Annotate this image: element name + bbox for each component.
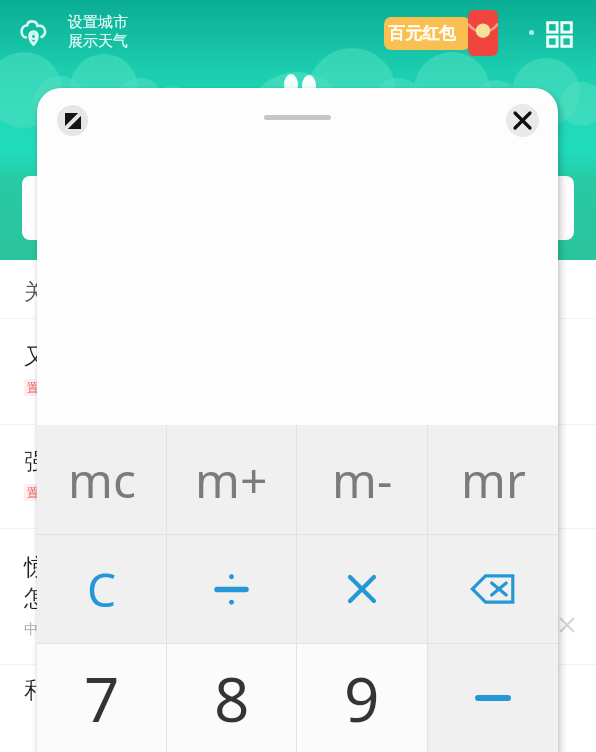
- staticText: 关注的人都在看什么呢: [24, 278, 244, 306]
- staticText: m+: [195, 447, 268, 512]
- staticText: 展示天气: [68, 32, 128, 51]
- staticText: 中青网: [24, 621, 66, 639]
- staticText: 9: [344, 656, 380, 740]
- button[interactable]: Close: [506, 104, 539, 137]
- button[interactable]: Red packet: [468, 10, 498, 56]
- button[interactable]: 强烈推荐这个方法真的很有效: [24, 447, 596, 528]
- button[interactable]: 惊了！这件事情背后的真相到底是 怎么样的呢: [24, 553, 596, 664]
- staticText: 和大家分享一下我的心得体会: [24, 676, 323, 705]
- staticText: 7: [84, 656, 120, 740]
- button[interactable]: Minus: [428, 644, 558, 752]
- staticText: mr: [461, 447, 526, 512]
- button[interactable]: 9: [297, 644, 427, 752]
- button[interactable]: mr: [428, 425, 558, 534]
- button[interactable]: Backspace: [428, 535, 558, 643]
- staticText: 设置城市: [68, 13, 128, 32]
- staticText: mc: [68, 447, 136, 512]
- button[interactable]: Set city weather: [10, 10, 56, 56]
- button[interactable]: 8: [167, 644, 296, 752]
- button[interactable]: Divide: [167, 535, 296, 643]
- staticText: 8: [214, 656, 250, 740]
- button[interactable]: Close ad: [556, 614, 578, 636]
- staticText: 置顶: [27, 380, 51, 395]
- staticText: m-: [332, 447, 393, 512]
- button[interactable]: 和大家分享一下我的心得体会: [0, 665, 596, 752]
- button[interactable]: 7: [37, 644, 166, 752]
- button[interactable]: m-: [297, 425, 427, 534]
- button[interactable]: Multiply: [297, 535, 427, 643]
- staticText: C: [87, 558, 117, 621]
- staticText: 百元红包: [388, 23, 456, 44]
- button[interactable]: Menu: [537, 12, 581, 56]
- staticText: 惊了！这件事情背后的真相到底是 怎么样的呢: [24, 553, 369, 613]
- staticText: 强烈推荐这个方法真的很有效: [24, 447, 323, 476]
- button[interactable]: Theme: [57, 105, 88, 136]
- button[interactable]: 设置城市: [68, 13, 128, 51]
- staticText: 又一个热门话题在这里展开讨论: [24, 342, 346, 371]
- staticText: 置顶: [27, 485, 51, 500]
- button[interactable]: mc: [37, 425, 166, 534]
- button[interactable]: C: [37, 535, 166, 643]
- button[interactable]: m+: [167, 425, 296, 534]
- button[interactable]: 关注的人都在看什么呢: [0, 260, 596, 318]
- button[interactable]: 又一个热门话题在这里展开讨论: [24, 342, 596, 424]
- button[interactable]: 百元红包: [384, 17, 470, 50]
